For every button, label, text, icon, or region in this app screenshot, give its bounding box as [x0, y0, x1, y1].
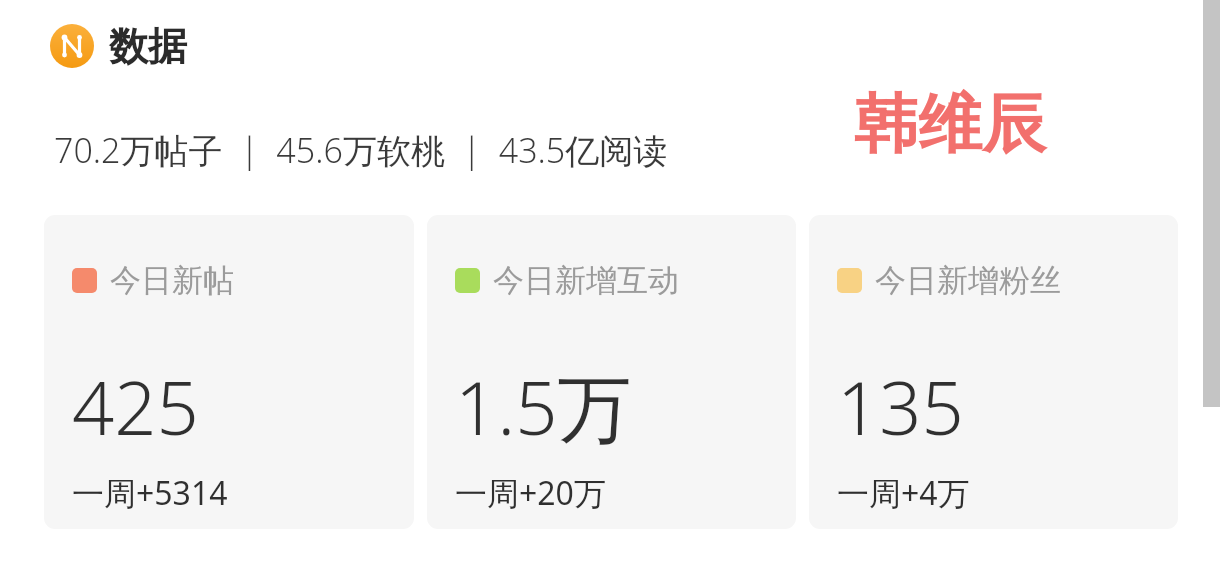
button[interactable]: 今日新增互动: [427, 215, 796, 529]
staticText: 今日新帖: [110, 261, 234, 300]
staticText: 一周+4万: [837, 471, 970, 515]
staticText: 韩维辰: [854, 84, 1046, 165]
button[interactable]: 今日新增粉丝: [809, 215, 1178, 529]
staticText: 425: [72, 356, 199, 457]
staticText: 135: [837, 356, 964, 457]
staticText: 今日新增互动: [493, 261, 679, 300]
staticText: 一周+20万: [455, 471, 606, 515]
button[interactable]: 数据: [50, 21, 187, 71]
button[interactable]: 今日新帖: [44, 215, 414, 529]
staticText: 今日新增粉丝: [875, 261, 1061, 300]
other: 数据: [50, 24, 94, 68]
staticText: 70.2万帖子 | 45.6万软桃 | 43.5亿阅读: [54, 127, 668, 173]
staticText: 数据: [109, 22, 187, 71]
staticText: 一周+5314: [72, 471, 228, 515]
staticText: 1.5万: [455, 356, 632, 457]
